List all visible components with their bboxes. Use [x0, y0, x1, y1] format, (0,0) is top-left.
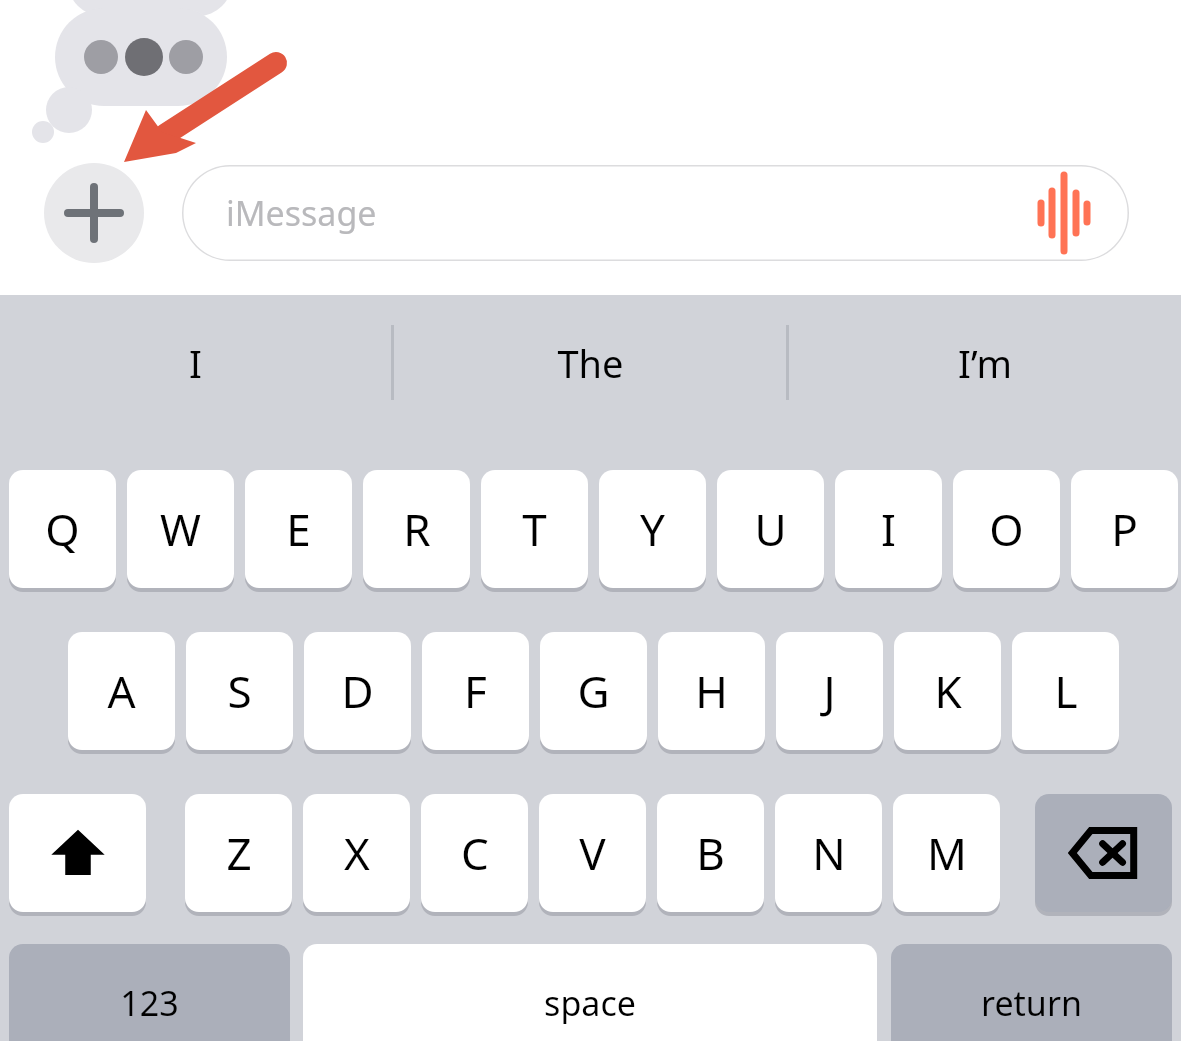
staticText: C	[461, 823, 489, 883]
staticText: W	[160, 499, 201, 559]
staticText: E	[286, 499, 311, 559]
staticText: A	[107, 661, 136, 721]
staticText: R	[403, 499, 431, 559]
staticText: D	[341, 661, 374, 721]
staticText: J	[823, 661, 836, 721]
staticText: K	[934, 661, 962, 721]
staticText: T	[522, 499, 547, 559]
button[interactable]: Q	[9, 470, 116, 588]
button[interactable]: C	[421, 794, 528, 912]
staticText: X	[344, 823, 370, 883]
button[interactable]: R	[363, 470, 470, 588]
button[interactable]: space	[303, 944, 877, 1041]
button[interactable]: I	[835, 470, 942, 588]
staticText: 123	[120, 980, 179, 1026]
staticText: U	[754, 499, 787, 559]
button[interactable]: P	[1071, 470, 1178, 588]
button[interactable]: X	[303, 794, 410, 912]
staticText: Q	[45, 499, 80, 559]
staticText: return	[981, 980, 1082, 1026]
button[interactable]: return	[891, 944, 1172, 1041]
button[interactable]: 123	[9, 944, 290, 1041]
button[interactable]: iMessage	[182, 165, 1129, 261]
staticText: S	[227, 661, 252, 721]
staticText: F	[464, 661, 487, 721]
button[interactable]: M	[893, 794, 1000, 912]
button[interactable]: T	[481, 470, 588, 588]
button[interactable]: N	[775, 794, 882, 912]
button[interactable]: U	[717, 470, 824, 588]
button[interactable]: L	[1012, 632, 1119, 750]
button[interactable]: Y	[599, 470, 706, 588]
button[interactable]: The	[394, 295, 786, 430]
staticText: P	[1111, 499, 1138, 559]
button[interactable]: Z	[185, 794, 292, 912]
button[interactable]: Add attachment	[44, 163, 144, 263]
button[interactable]: I’m	[789, 295, 1181, 430]
button[interactable]: Delete	[1035, 794, 1172, 912]
button[interactable]: F	[422, 632, 529, 750]
staticText: N	[812, 823, 846, 883]
staticText: Y	[640, 499, 665, 559]
button[interactable]: K	[894, 632, 1001, 750]
staticText: iMessage	[226, 190, 377, 236]
staticText: I	[881, 499, 896, 559]
staticText: L	[1054, 661, 1078, 721]
button[interactable]: W	[127, 470, 234, 588]
button[interactable]: A	[68, 632, 175, 750]
staticText: Z	[226, 823, 252, 883]
button[interactable]: D	[304, 632, 411, 750]
button[interactable]: I	[0, 295, 391, 430]
staticText: The	[557, 337, 624, 389]
button[interactable]: S	[186, 632, 293, 750]
staticText: V	[579, 823, 606, 883]
button[interactable]: J	[776, 632, 883, 750]
button[interactable]: Shift	[9, 794, 146, 912]
button[interactable]: Record audio message	[1039, 183, 1099, 243]
staticText: G	[577, 661, 610, 721]
staticText: space	[544, 980, 636, 1026]
staticText: I	[189, 337, 202, 389]
staticText: I’m	[958, 337, 1012, 389]
staticText: H	[695, 661, 728, 721]
button[interactable]: E	[245, 470, 352, 588]
staticText: B	[696, 823, 725, 883]
staticText: O	[989, 499, 1024, 559]
button[interactable]: H	[658, 632, 765, 750]
button[interactable]: B	[657, 794, 764, 912]
button[interactable]: O	[953, 470, 1060, 588]
button[interactable]: V	[539, 794, 646, 912]
button[interactable]: G	[540, 632, 647, 750]
staticText: M	[927, 823, 967, 883]
